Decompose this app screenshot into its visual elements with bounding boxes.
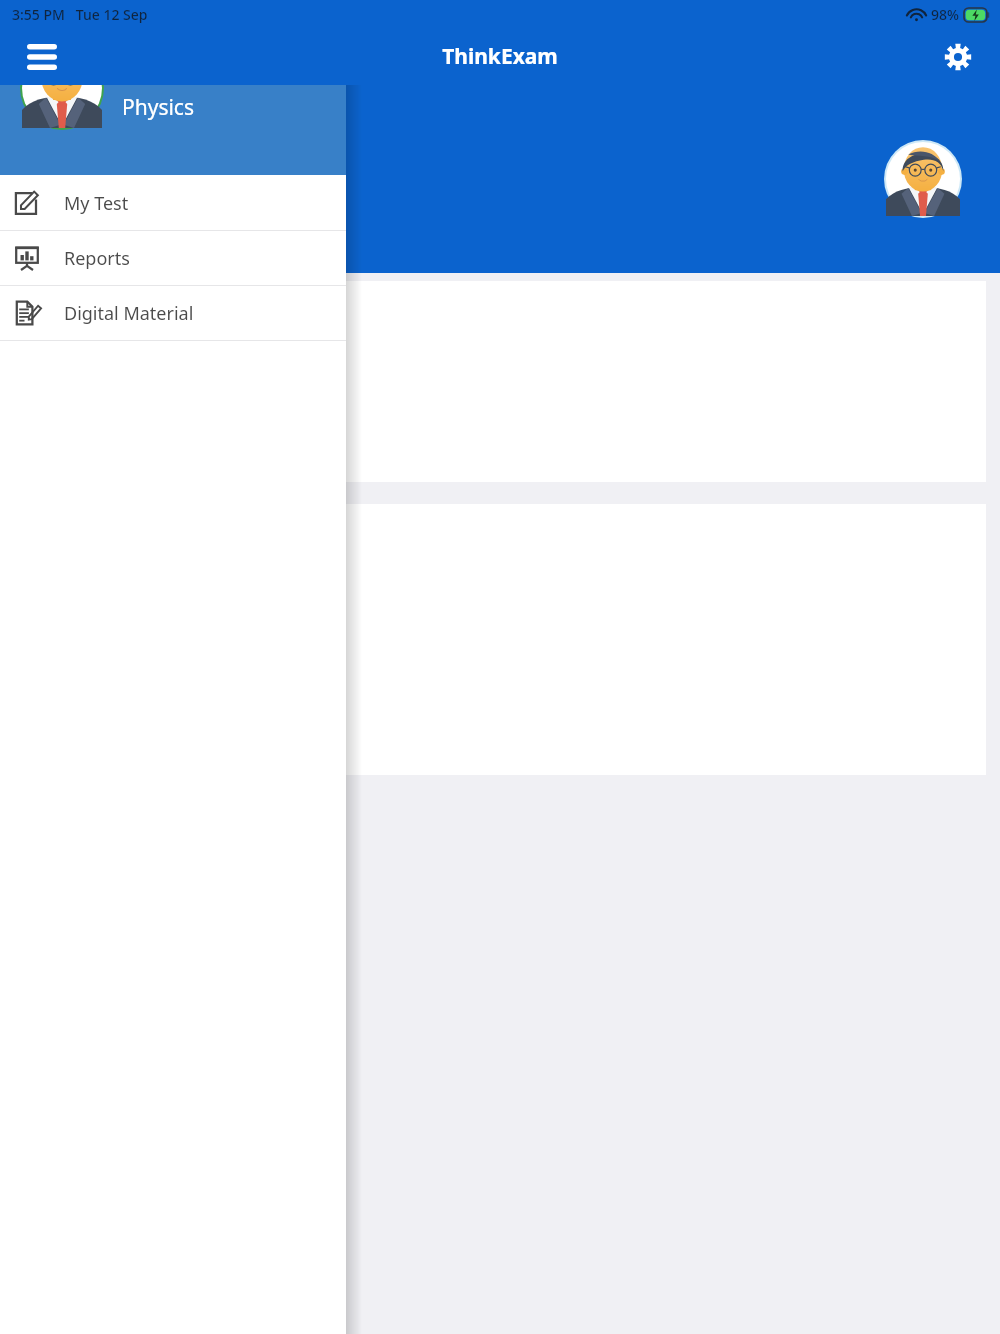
button[interactable]: Open navigation menu [20, 35, 64, 79]
staticText: Physics [122, 93, 195, 122]
staticText: 98% [931, 5, 959, 24]
staticText: 3:55 PM Tue 12 Sep [12, 5, 148, 24]
staticText: 3:55 PM Tue 12 Sep [12, 5, 148, 24]
button[interactable]: Profile [884, 140, 962, 218]
staticText: Digital Material [64, 301, 194, 326]
button[interactable]: Settings [936, 35, 980, 79]
button[interactable]: My Test [0, 176, 346, 230]
staticText: Reports [64, 246, 130, 271]
staticText: ThinkExam [442, 42, 558, 71]
button[interactable]: Reports [0, 231, 346, 285]
button[interactable]: Open navigation menu [20, 35, 64, 79]
staticText: 98% [931, 5, 959, 24]
button[interactable] [0, 281, 986, 482]
button[interactable]: Settings [936, 35, 980, 79]
button[interactable]: santosh [0, 0, 346, 175]
staticText: My Test [64, 191, 129, 216]
button[interactable]: Digital Material [0, 286, 346, 340]
staticText: ThinkExam [442, 42, 558, 71]
